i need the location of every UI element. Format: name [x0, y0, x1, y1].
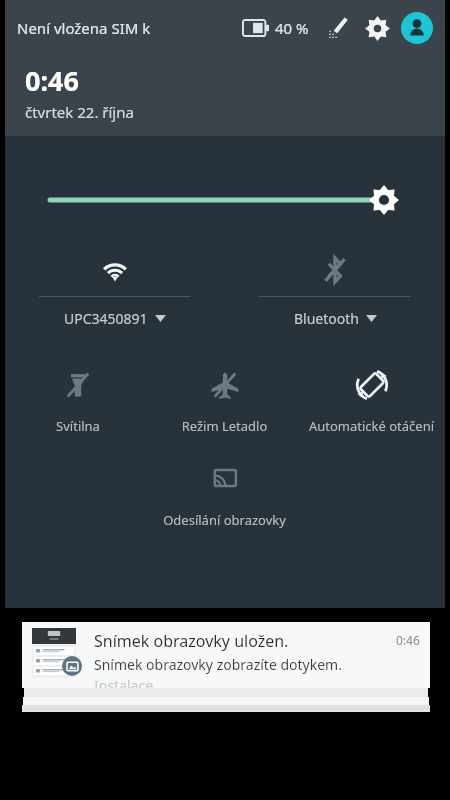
button[interactable]: Settings	[361, 12, 393, 44]
staticText: Svítilna	[7, 417, 149, 435]
staticText: 0:46	[25, 62, 79, 99]
button[interactable]: Edit quick settings	[323, 13, 353, 43]
staticText: Odesílání obrazovky	[153, 511, 296, 529]
staticText: Snímek obrazovky zobrazíte dotykem.	[94, 655, 342, 674]
button[interactable]: User	[401, 12, 433, 44]
button[interactable]: Bluetooth	[225, 244, 445, 349]
button[interactable]: Svítilna	[5, 363, 151, 435]
button[interactable]: Brightness	[50, 178, 400, 222]
staticText: Instalace	[94, 676, 154, 688]
staticText: UPC3450891	[64, 309, 148, 328]
staticText: 0:46	[396, 632, 420, 648]
button[interactable]: Režim Letadlo	[151, 363, 298, 435]
staticText: Automatické otáčení	[300, 417, 443, 435]
staticText: Snímek obrazovky uložen.	[94, 630, 289, 652]
staticText: Režim Letadlo	[153, 417, 296, 435]
button[interactable]: Snímek obrazovky uložen.	[22, 622, 430, 688]
staticText: Bluetooth	[294, 309, 359, 328]
staticText: čtvrtek 22. října	[25, 102, 134, 122]
staticText: 40 %	[275, 18, 309, 38]
staticText: Není vložena SIM k	[17, 18, 151, 38]
button[interactable]: Odesílání obrazovky	[151, 457, 298, 529]
button[interactable]: UPC3450891	[5, 244, 225, 349]
button[interactable]: Automatické otáčení	[298, 363, 445, 435]
